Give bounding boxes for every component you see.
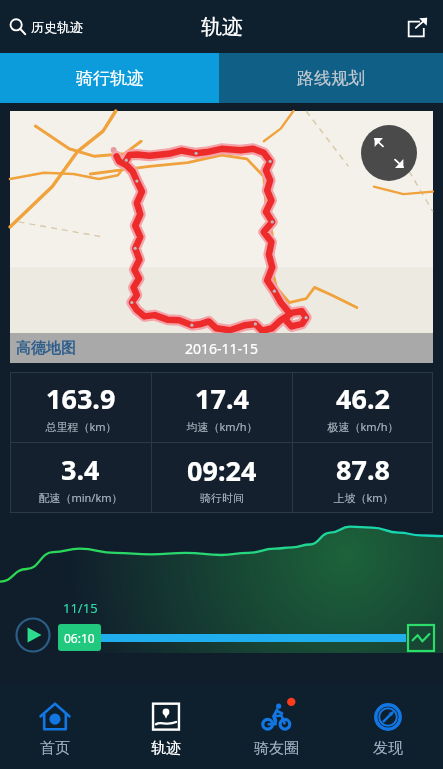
staticText: 2016-11-15 xyxy=(185,339,259,358)
staticText: 轨迹 xyxy=(201,14,243,40)
staticText: 总里程（km） xyxy=(45,419,117,434)
staticText: 极速（km/h） xyxy=(327,419,399,434)
staticText: 首页 xyxy=(40,739,70,758)
button[interactable]: 历史轨迹 xyxy=(0,12,93,41)
button[interactable]: Share xyxy=(397,7,437,47)
staticText: 均速（km/h） xyxy=(186,419,258,434)
button[interactable]: 高德地图 xyxy=(10,111,433,363)
staticText: 17.4 xyxy=(195,380,249,417)
button[interactable]: 163.9 xyxy=(10,372,151,442)
button[interactable]: 06:10 xyxy=(58,624,101,651)
staticText: 骑行轨迹 xyxy=(76,68,144,89)
button[interactable]: 发现 xyxy=(332,685,443,769)
staticText: 骑友圈 xyxy=(254,739,299,758)
staticText: 骑行时间 xyxy=(200,491,244,505)
button[interactable]: 路线规划 xyxy=(219,53,443,103)
staticText: 路线规划 xyxy=(297,68,365,89)
button[interactable]: 轨迹 xyxy=(110,685,221,769)
button[interactable]: 骑行轨迹 xyxy=(0,53,219,103)
button[interactable]: Play track xyxy=(11,617,55,653)
button[interactable]: 17.4 xyxy=(152,372,292,442)
staticText: 轨迹 xyxy=(151,739,181,758)
button[interactable]: 骑友圈 xyxy=(221,685,332,769)
button[interactable]: 首页 xyxy=(0,685,110,769)
staticText: 163.9 xyxy=(46,380,116,417)
staticText: 87.8 xyxy=(336,451,390,488)
button[interactable]: Elevation chart xyxy=(407,624,435,652)
button[interactable]: 3.4 xyxy=(10,443,151,513)
staticText: 09:24 xyxy=(187,452,257,489)
button[interactable]: 46.2 xyxy=(293,372,433,442)
button[interactable]: 87.8 xyxy=(293,443,433,513)
staticText: 高德地图 xyxy=(16,339,76,358)
staticText: 配速（min/km） xyxy=(38,490,123,505)
staticText: 11/15 xyxy=(63,599,98,617)
staticText: 3.4 xyxy=(61,451,100,488)
staticText: 06:10 xyxy=(64,630,95,646)
staticText: 上坡（km） xyxy=(333,490,394,505)
staticText: 发现 xyxy=(373,739,403,758)
staticText: 46.2 xyxy=(336,380,390,417)
button[interactable]: Expand map xyxy=(361,125,417,181)
button[interactable]: 09:24 xyxy=(152,443,292,513)
staticText: 历史轨迹 xyxy=(31,19,83,35)
